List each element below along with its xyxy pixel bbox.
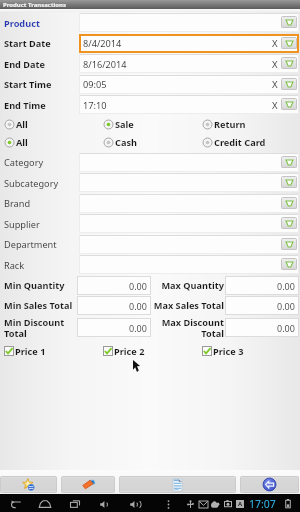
button[interactable]: 0.00	[77, 296, 151, 315]
button[interactable]: Open list	[281, 78, 297, 90]
staticText: Total	[201, 327, 224, 340]
staticText: All	[16, 136, 28, 149]
button[interactable]: Sale	[103, 117, 134, 131]
staticText: 0.00	[277, 300, 295, 312]
staticText: 8/4/2014	[83, 37, 122, 50]
staticText: Credit Card	[214, 136, 266, 149]
button[interactable]	[79, 54, 299, 73]
button[interactable]: Price 3	[202, 344, 244, 358]
button[interactable]: Open list	[281, 57, 297, 69]
staticText: X	[272, 99, 278, 112]
staticText: 17:10	[83, 99, 107, 112]
button[interactable]	[79, 255, 299, 274]
button[interactable]: Volume up	[127, 496, 143, 512]
button[interactable]	[79, 75, 299, 94]
staticText: A	[238, 500, 243, 508]
staticText: Price 3	[213, 345, 244, 358]
staticText: Rack	[4, 259, 25, 272]
button[interactable]: Cash	[103, 135, 137, 149]
staticText: Price 2	[114, 345, 145, 358]
staticText: End Time	[4, 99, 46, 112]
staticText: 09:05	[83, 78, 107, 91]
button[interactable]: Return	[202, 117, 246, 131]
button[interactable]	[79, 194, 299, 213]
button[interactable]: All	[4, 117, 28, 131]
button[interactable]: Open list	[281, 238, 297, 250]
button[interactable]: Open list	[281, 197, 297, 209]
staticText: Min Sales Total	[4, 299, 73, 312]
staticText: Return	[214, 118, 246, 131]
staticText: 0.00	[129, 322, 147, 334]
button[interactable]: Clear	[269, 36, 280, 50]
button[interactable]: Clear	[269, 57, 280, 71]
staticText: Price 1	[15, 345, 46, 358]
button[interactable]: Credit Card	[202, 135, 266, 149]
button[interactable]: 0.00	[225, 296, 299, 315]
staticText: Department	[4, 238, 57, 251]
staticText: 17:07	[249, 497, 276, 511]
button[interactable]	[79, 173, 299, 192]
staticText: Cash	[115, 136, 137, 149]
button[interactable]: Clear	[269, 77, 280, 91]
button[interactable]: Home	[37, 496, 53, 512]
button[interactable]: Price 1	[4, 344, 46, 358]
button[interactable]: Open list	[281, 258, 297, 270]
staticText: Sale	[115, 118, 134, 131]
staticText: Min Discount	[4, 316, 65, 329]
staticText: Total	[4, 327, 27, 340]
button[interactable]: 0.00	[77, 318, 151, 337]
staticText: Product	[4, 17, 40, 30]
button[interactable]	[79, 153, 299, 172]
staticText: X	[272, 37, 278, 50]
button[interactable]: Report	[119, 476, 236, 493]
button[interactable]	[79, 13, 299, 32]
staticText: X	[272, 78, 278, 91]
staticText: Product Transactions	[3, 1, 66, 9]
button[interactable]: Recent apps	[67, 496, 83, 512]
staticText: Max Sales Total	[153, 299, 224, 312]
button[interactable]: Back	[7, 496, 23, 512]
staticText: 0.00	[277, 322, 295, 334]
button[interactable]	[79, 34, 299, 53]
staticText: Max Quantity	[161, 279, 224, 292]
button[interactable]: Open list	[281, 176, 297, 188]
button[interactable]: 0.00	[225, 318, 299, 337]
staticText: Supplier	[4, 218, 40, 231]
button[interactable]	[79, 214, 299, 233]
button[interactable]: Open list	[281, 217, 297, 229]
staticText: 0.00	[277, 280, 295, 292]
staticText: 8/16/2014	[83, 58, 127, 71]
button[interactable]: Clear	[61, 476, 115, 493]
staticText: 0.00	[129, 300, 147, 312]
button[interactable]: Clear	[269, 98, 280, 112]
button[interactable]: Open list	[281, 156, 297, 168]
staticText: Subcategory	[4, 177, 59, 190]
button[interactable]: Favorites	[0, 476, 57, 493]
staticText: Brand	[4, 197, 31, 210]
button[interactable]: Volume down	[97, 496, 113, 512]
button[interactable]	[79, 235, 299, 254]
button[interactable]: More options	[160, 496, 176, 512]
button[interactable]: All	[4, 135, 28, 149]
button[interactable]	[79, 95, 299, 114]
staticText: End Date	[4, 58, 46, 71]
button[interactable]: Open list	[281, 98, 297, 110]
button[interactable]: Open list	[281, 16, 297, 28]
button[interactable]: 0.00	[77, 276, 151, 295]
button[interactable]: Open list	[281, 37, 297, 49]
staticText: Start Time	[4, 78, 52, 91]
staticText: Category	[4, 156, 44, 169]
staticText: All	[16, 118, 28, 131]
staticText: Start Date	[4, 37, 51, 50]
button[interactable]: 0.00	[225, 276, 299, 295]
button[interactable]: Price 2	[103, 344, 145, 358]
staticText: Max Discount	[161, 316, 224, 329]
button[interactable]: Back	[240, 476, 299, 493]
staticText: 0.00	[129, 280, 147, 292]
staticText: Min Quantity	[4, 279, 65, 292]
staticText: X	[272, 58, 278, 71]
